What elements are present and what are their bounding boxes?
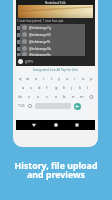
staticText: g bbox=[55, 85, 58, 90]
staticText: i bbox=[74, 76, 76, 81]
staticText: Nextcloud Talk bbox=[45, 1, 66, 5]
button[interactable]: ?123 bbox=[17, 102, 25, 110]
staticText: f bbox=[46, 85, 48, 90]
button[interactable]: Send bbox=[74, 103, 81, 110]
staticText: o bbox=[82, 76, 85, 81]
staticText: p bbox=[90, 76, 93, 81]
button[interactable]: e bbox=[33, 74, 39, 83]
staticText: s bbox=[30, 85, 32, 90]
staticText: @telstrange9x bbox=[29, 53, 51, 57]
staticText: Integrated into All Tap for Info bbox=[33, 68, 79, 72]
button[interactable]: @telstrange9x bbox=[20, 52, 85, 57]
staticText: @telstrange9b bbox=[29, 47, 51, 51]
staticText: w bbox=[26, 76, 30, 81]
button[interactable]: z bbox=[26, 92, 32, 101]
button[interactable]: k bbox=[77, 83, 83, 92]
button[interactable]: w bbox=[25, 74, 31, 83]
staticText: @TPS bbox=[25, 60, 33, 64]
staticText: @telstrange9t bbox=[29, 40, 51, 44]
button[interactable]: Nextcloud Talk bbox=[16, 0, 95, 5]
staticText: q bbox=[19, 76, 22, 81]
button[interactable]: u bbox=[64, 74, 70, 83]
button[interactable]: l bbox=[85, 83, 91, 92]
staticText: n bbox=[72, 94, 75, 99]
button[interactable]: Backspace bbox=[88, 94, 94, 100]
staticText: 1 user has joined, 1 user has quit bbox=[17, 19, 64, 23]
staticText: l bbox=[87, 85, 89, 90]
button[interactable]: Back bbox=[30, 121, 38, 129]
staticText: y bbox=[58, 76, 61, 81]
button[interactable]: h bbox=[61, 83, 67, 92]
button[interactable]: @telstrange92 bbox=[20, 31, 85, 38]
button[interactable]: Home bbox=[52, 121, 60, 129]
button[interactable]: b bbox=[61, 92, 67, 101]
staticText: b bbox=[63, 94, 66, 99]
button[interactable]: r bbox=[41, 74, 47, 83]
staticText: d bbox=[38, 85, 41, 90]
button[interactable]: d bbox=[36, 83, 42, 92]
staticText: @telstrange92 bbox=[29, 33, 51, 37]
staticText: m bbox=[80, 94, 84, 99]
button[interactable]: j bbox=[69, 83, 75, 92]
button[interactable]: t bbox=[49, 74, 55, 83]
button[interactable]: x bbox=[35, 92, 41, 101]
staticText: z bbox=[28, 94, 30, 99]
staticText: k bbox=[79, 85, 82, 90]
button[interactable]: m bbox=[79, 92, 85, 101]
staticText: x bbox=[37, 94, 40, 99]
button[interactable]: @telstrange9b bbox=[20, 45, 85, 52]
button[interactable]: @telstrange7g bbox=[20, 24, 85, 31]
button[interactable]: s bbox=[28, 83, 34, 92]
button[interactable]: c bbox=[44, 92, 50, 101]
staticText: @telstrange7g bbox=[29, 26, 51, 30]
button[interactable]: Emoji bbox=[28, 104, 32, 108]
button[interactable]: g bbox=[53, 83, 59, 92]
button[interactable]: q bbox=[17, 74, 23, 83]
staticText: c bbox=[46, 94, 48, 99]
staticText: History, file upload and previews bbox=[0, 160, 112, 181]
button[interactable]: Recents bbox=[73, 121, 81, 129]
staticText: t bbox=[51, 76, 53, 81]
staticText: j bbox=[71, 85, 73, 90]
staticText: r bbox=[43, 76, 45, 81]
staticText: ?123 bbox=[18, 104, 25, 108]
staticText: e bbox=[35, 76, 38, 81]
button[interactable]: a bbox=[20, 83, 26, 92]
button[interactable]: f bbox=[44, 83, 50, 92]
staticText: v bbox=[55, 94, 58, 99]
button[interactable]: Shift bbox=[17, 94, 23, 100]
button[interactable]: @telstrange9t bbox=[20, 38, 85, 45]
button[interactable]: o bbox=[80, 74, 86, 83]
staticText: u bbox=[66, 76, 69, 81]
button[interactable]: n bbox=[70, 92, 76, 101]
staticText: h bbox=[63, 85, 66, 90]
button[interactable]: v bbox=[53, 92, 59, 101]
button[interactable]: p bbox=[88, 74, 94, 83]
staticText: a bbox=[22, 85, 25, 90]
button[interactable]: i bbox=[72, 74, 78, 83]
button[interactable]: y bbox=[56, 74, 62, 83]
